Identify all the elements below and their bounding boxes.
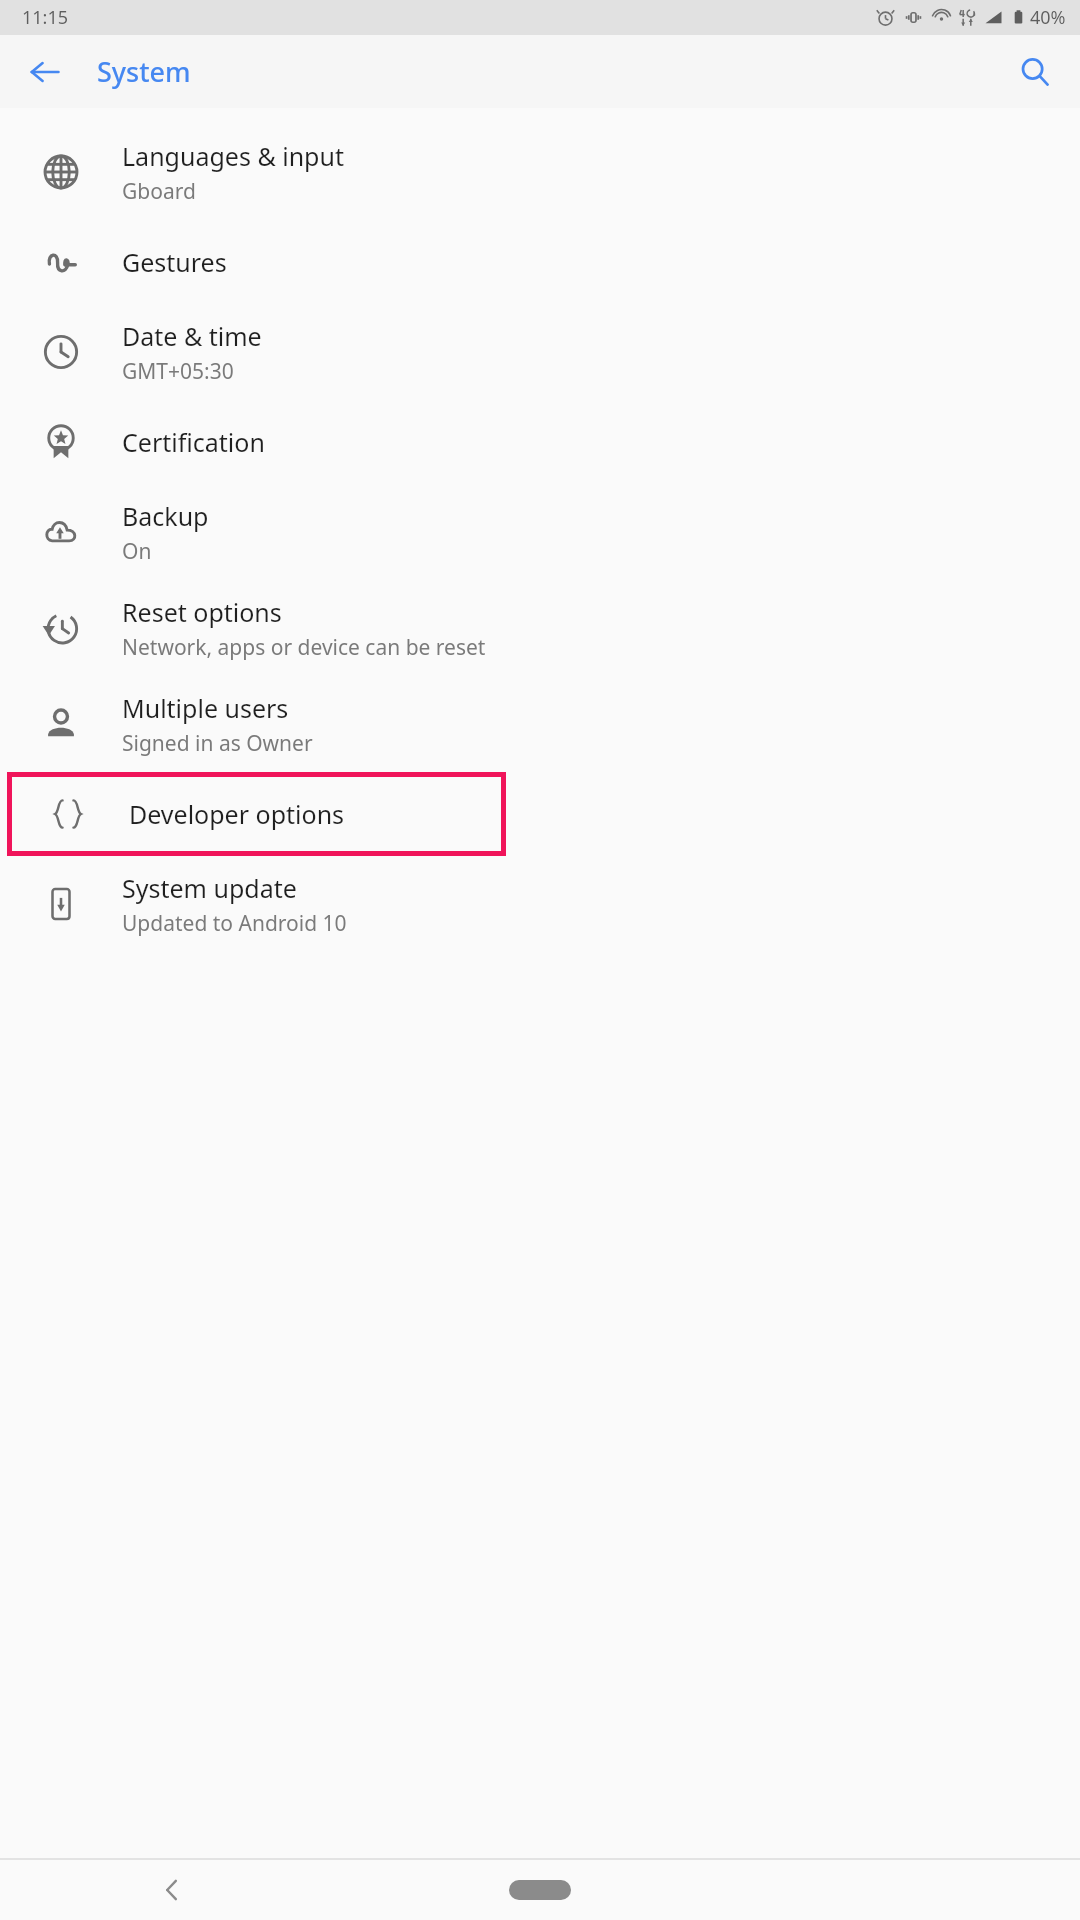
button[interactable]: Backup [0, 484, 1080, 580]
staticText: Date & time [122, 319, 262, 353]
button[interactable]: Gestures [0, 220, 1080, 304]
button[interactable]: Date & time [0, 304, 1080, 400]
staticText: 11:15 [22, 5, 69, 30]
staticText: 40% [1030, 5, 1066, 30]
staticText: System [97, 53, 191, 90]
staticText: System update [122, 871, 297, 905]
button[interactable]: Search [1012, 49, 1058, 95]
button[interactable]: Certification [0, 400, 1080, 484]
staticText: Updated to Android 10 [122, 909, 347, 938]
staticText: On [122, 537, 152, 566]
staticText: Developer options [129, 797, 345, 831]
staticText: Signed in as Owner [122, 729, 313, 758]
button[interactable]: Back [148, 1866, 196, 1914]
button[interactable]: Back [22, 49, 68, 95]
button[interactable]: Home [501, 1866, 579, 1914]
staticText: Reset options [122, 595, 282, 629]
staticText: Gestures [122, 245, 227, 279]
button[interactable]: Languages & input [0, 124, 1080, 220]
staticText: Multiple users [122, 691, 289, 725]
button[interactable]: System update [0, 856, 1080, 952]
staticText: Backup [122, 499, 209, 533]
staticText: Network, apps or device can be reset [122, 633, 486, 662]
button[interactable]: Reset options [0, 580, 1080, 676]
button[interactable]: Multiple users [0, 676, 1080, 772]
staticText: GMT+05:30 [122, 357, 234, 386]
button[interactable]: Developer options [7, 772, 506, 856]
staticText: Languages & input [122, 139, 344, 173]
staticText: Gboard [122, 177, 196, 206]
staticText: Certification [122, 425, 265, 459]
